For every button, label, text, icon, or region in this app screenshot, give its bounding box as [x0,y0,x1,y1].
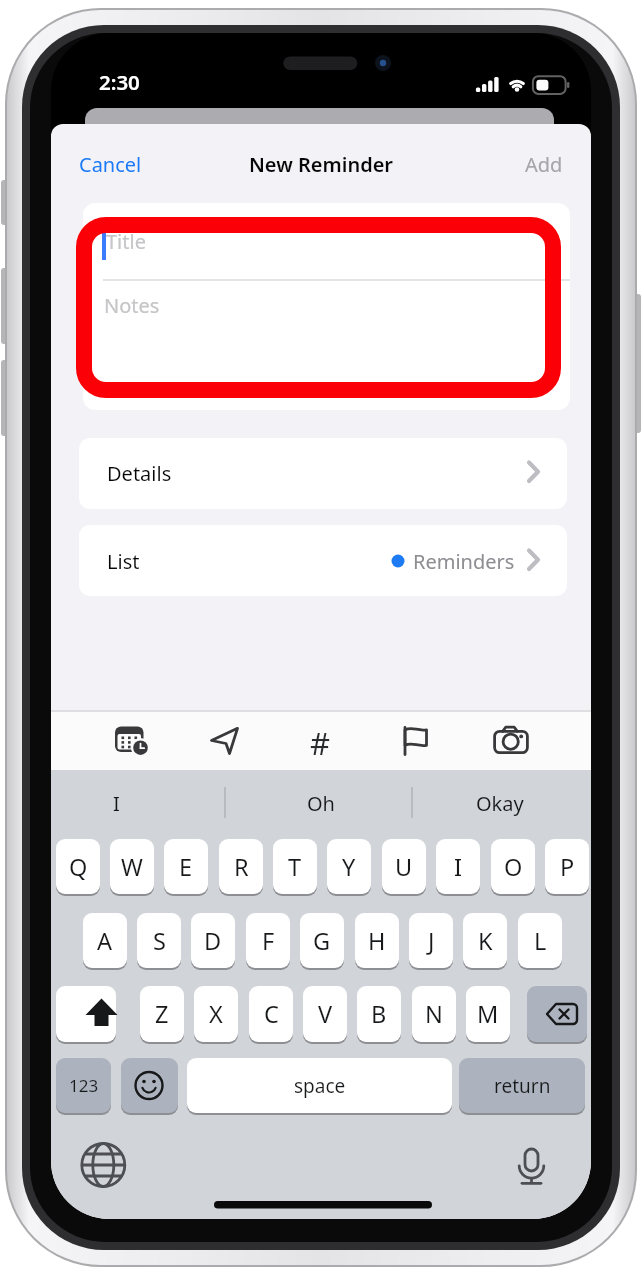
staticText: # [310,722,331,760]
staticText: L [534,925,547,957]
button[interactable]: H [355,913,399,968]
staticText: Title [106,228,146,255]
button[interactable]: Okay [455,788,545,818]
staticText: Okay [476,790,524,817]
button[interactable]: D [191,913,235,968]
staticText: S [153,925,166,957]
staticText: H [368,925,386,957]
staticText: Z [155,998,169,1030]
button[interactable]: K [463,913,507,968]
staticText: J [428,925,435,957]
staticText: E [179,851,193,883]
staticText: M [477,998,499,1030]
button[interactable]: W [110,839,154,894]
staticText: space [294,1073,346,1099]
button[interactable]: I [436,839,480,894]
staticText: G [313,925,331,957]
button[interactable]: Z [140,986,184,1042]
button[interactable]: R [219,839,263,894]
staticText: T [288,851,302,883]
button[interactable]: C [249,986,293,1042]
button[interactable]: G [300,913,344,968]
button[interactable]: N [412,986,456,1042]
staticText: Add [525,151,563,178]
staticText: B [371,998,387,1030]
button[interactable]: F [246,913,290,968]
button[interactable] [56,986,116,1042]
staticText: D [204,925,222,957]
button[interactable]: space [187,1058,452,1113]
button[interactable]: I [71,788,161,818]
staticText: Oh [307,790,335,817]
staticText: U [395,851,413,883]
staticText: R [234,851,249,883]
button[interactable]: Oh [276,788,366,818]
button[interactable]: L [518,913,562,968]
staticText: List [107,548,140,575]
staticText: Y [342,851,356,883]
staticText: 123 [69,1074,99,1097]
button[interactable]: O [491,839,535,894]
staticText: Cancel [79,151,142,178]
button[interactable]: Details [79,438,567,509]
button[interactable]: V [303,986,347,1042]
button[interactable]: E [164,839,208,894]
button[interactable] [121,1058,178,1113]
staticText: return [494,1073,551,1099]
button[interactable]: M [466,986,510,1042]
button[interactable] [527,986,587,1042]
staticText: F [262,925,275,957]
staticText: O [504,851,523,883]
button[interactable]: return [459,1058,585,1113]
button[interactable]: J [409,913,453,968]
staticText: 2:30 [99,68,140,96]
staticText: I [113,790,120,817]
button[interactable]: X [194,986,238,1042]
staticText: W [121,851,143,883]
button[interactable]: List [79,525,567,596]
staticText: P [560,851,575,883]
staticText: K [478,925,493,957]
staticText: C [264,998,279,1030]
button[interactable]: Title [83,203,570,410]
staticText: X [209,998,223,1030]
button[interactable]: Q [56,839,100,894]
button[interactable]: Add [483,150,563,178]
button[interactable]: P [545,839,589,894]
staticText: A [97,925,113,957]
staticText: N [425,998,443,1030]
button[interactable]: Cancel [79,150,159,178]
button[interactable]: 123 [56,1058,111,1113]
button[interactable]: A [83,913,127,968]
button[interactable]: B [357,986,401,1042]
button[interactable]: T [273,839,317,894]
button[interactable]: U [382,839,426,894]
staticText: V [318,998,333,1030]
staticText: New Reminder [249,151,394,178]
staticText: Details [107,460,172,487]
button[interactable]: Y [327,839,371,894]
staticText: Reminders [413,548,515,575]
staticText: I [454,851,462,883]
staticText: Notes [104,292,160,319]
button[interactable]: S [137,913,181,968]
staticText: Q [69,851,88,883]
